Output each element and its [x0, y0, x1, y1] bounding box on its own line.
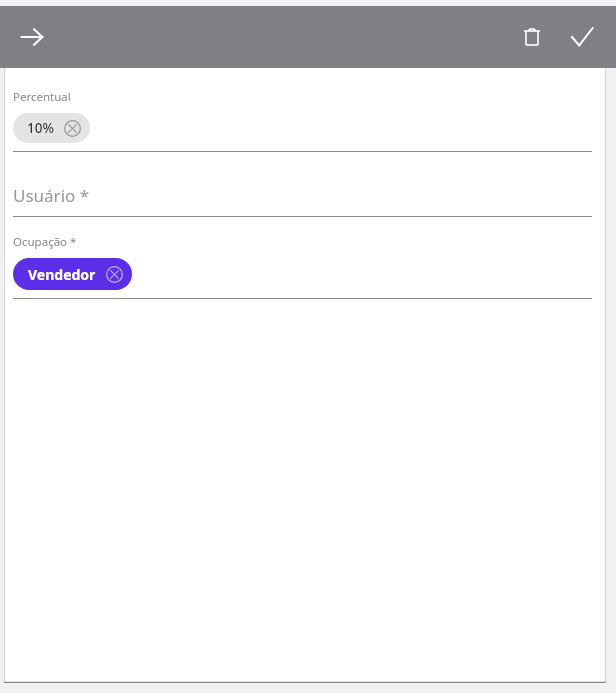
button[interactable]: Salvar — [560, 15, 604, 59]
button[interactable]: 10% — [13, 113, 90, 143]
staticText: Percentual — [13, 89, 71, 105]
staticText: Ocupação * — [13, 234, 77, 250]
staticText: 10% — [27, 119, 54, 137]
button[interactable]: Voltar — [8, 13, 56, 61]
button[interactable]: Excluir — [510, 15, 554, 59]
staticText: Usuário * — [13, 184, 90, 207]
staticText: Vendedor — [28, 265, 96, 284]
button[interactable]: Vendedor — [13, 258, 132, 290]
